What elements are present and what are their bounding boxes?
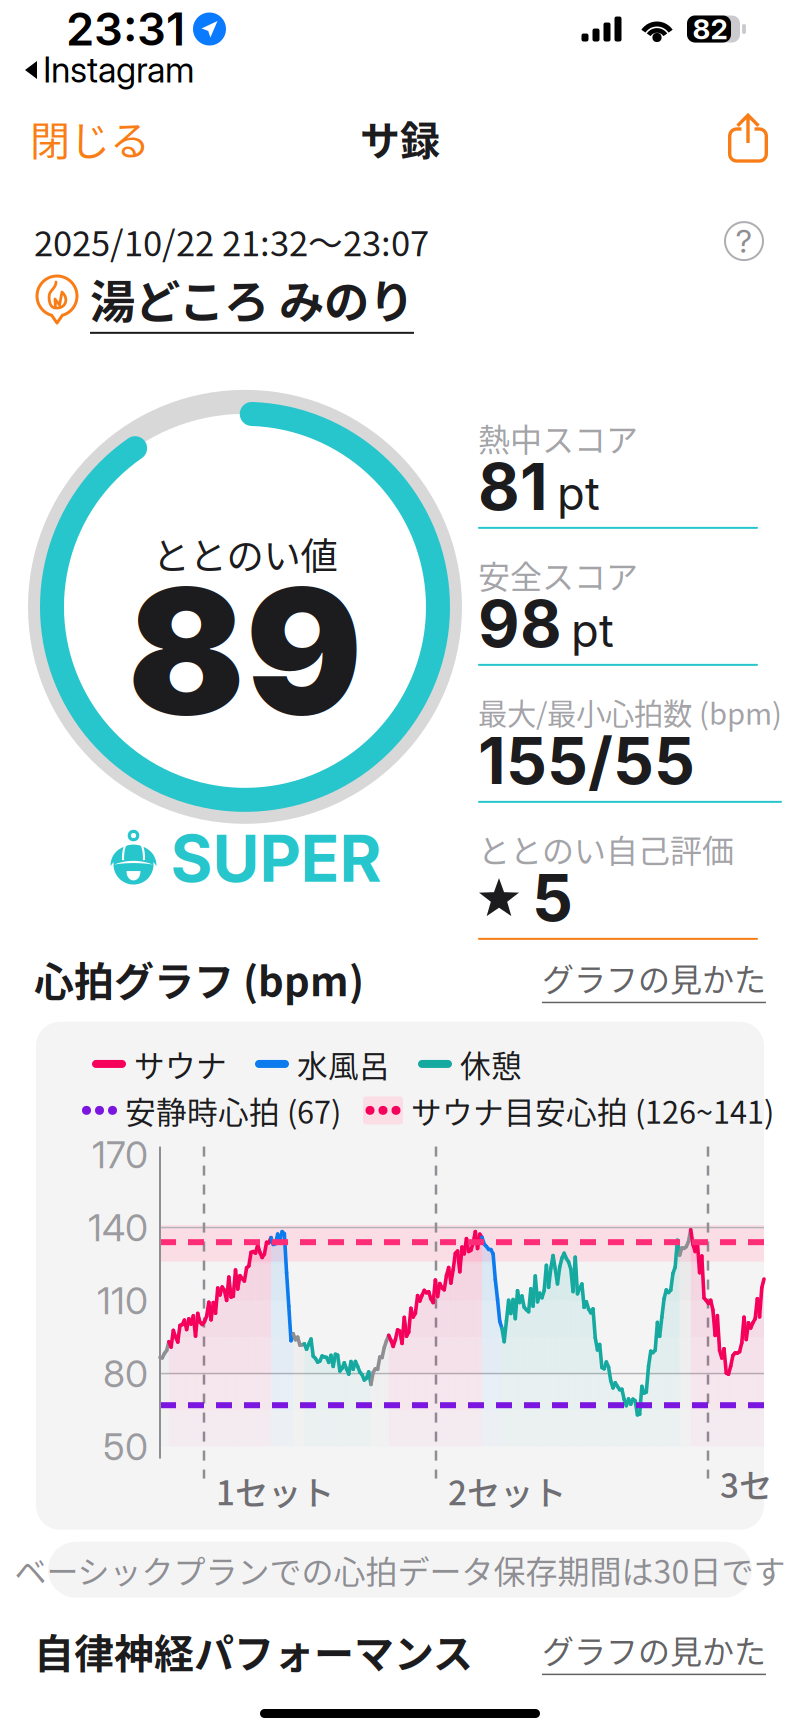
staticText: 5	[532, 859, 573, 936]
button[interactable]: グラフの見かた	[542, 1626, 766, 1675]
staticText: 心拍グラフ (bpm)	[34, 950, 364, 1008]
staticText: 98	[478, 585, 562, 662]
staticText: 155/55	[478, 722, 695, 799]
button[interactable]: グラフの見かた	[542, 954, 766, 1003]
staticText: ベーシックプランでの心拍データ保存期間は30日です	[14, 1547, 785, 1593]
button[interactable]: 共有	[710, 107, 800, 169]
staticText: 81	[478, 448, 548, 525]
staticText: 水風呂	[297, 1042, 390, 1086]
button[interactable]: 閉じる	[0, 97, 168, 179]
staticText: 閉じる	[30, 109, 150, 167]
staticText: 最大/最小心拍数 (bpm)	[478, 691, 782, 733]
staticText: ととのい自己評価	[478, 826, 734, 872]
staticText: 熱中スコア	[478, 415, 638, 461]
staticText: 2セット	[448, 1467, 566, 1515]
staticText: SUPER	[170, 820, 381, 897]
staticText: 湯どころ みのり	[90, 266, 414, 332]
staticText: 1セット	[216, 1467, 334, 1515]
staticText: 2025/10/22 21:32〜23:07	[34, 216, 429, 266]
staticText: 89	[127, 546, 362, 756]
staticText: 自律神経パフォーマンス	[34, 1622, 473, 1680]
button[interactable]: 湯どころ みのり	[0, 266, 800, 334]
staticText: ととのい値	[152, 527, 337, 581]
staticText: サウナ	[134, 1042, 227, 1086]
staticText: 3セ	[720, 1459, 772, 1508]
staticText: 82	[692, 12, 727, 46]
staticText: グラフの見かた	[542, 1626, 766, 1673]
staticText: pt	[571, 603, 614, 658]
staticText: 140	[88, 1205, 148, 1250]
staticText: 80	[103, 1351, 148, 1396]
staticText: サ録	[360, 109, 440, 167]
staticText: ?	[735, 222, 752, 260]
staticText: 安静時心拍 (67)	[125, 1088, 341, 1133]
button[interactable]: ヘルプ	[722, 219, 766, 263]
staticText: 170	[92, 1132, 148, 1177]
staticText: 休憩	[460, 1042, 522, 1086]
staticText: 安全スコア	[478, 552, 638, 598]
staticText: グラフの見かた	[542, 954, 766, 1001]
staticText: Instagram	[43, 49, 195, 91]
staticText: 23:31	[66, 2, 185, 56]
staticText: サウナ目安心拍 (126~141)	[411, 1088, 774, 1133]
staticText: 50	[103, 1424, 148, 1469]
staticText: 110	[97, 1278, 148, 1323]
staticText: pt	[557, 466, 600, 521]
